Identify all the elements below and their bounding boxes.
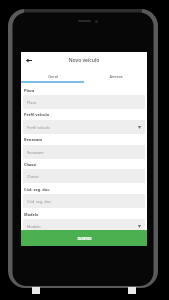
staticText: Cód. seg. doc. xyxy=(24,187,51,192)
staticText: Perfil veículo xyxy=(24,112,50,117)
button[interactable]: Chassi xyxy=(23,169,145,183)
button[interactable]: Perfil veículo xyxy=(23,120,145,134)
staticText: Chassi xyxy=(24,162,37,167)
button[interactable]: Renavam xyxy=(23,145,145,159)
staticText: Chassi xyxy=(27,174,39,179)
staticText: INSERIR xyxy=(77,236,92,241)
staticText: Modelo xyxy=(24,212,39,217)
staticText: Placa xyxy=(24,88,35,93)
staticText: Geral xyxy=(48,74,58,79)
staticText: Anexos xyxy=(109,74,123,79)
staticText: Renavam xyxy=(27,150,44,155)
staticText: Modelo xyxy=(27,224,41,229)
staticText: Novo veículo xyxy=(21,57,147,64)
button[interactable]: Placa xyxy=(23,95,145,109)
button[interactable]: Modelo xyxy=(23,219,145,233)
staticText: Renavam xyxy=(24,137,43,142)
button[interactable]: Back xyxy=(21,52,36,69)
button[interactable]: INSERIR xyxy=(21,230,147,246)
button[interactable]: Cód. seg. doc. xyxy=(23,194,145,208)
staticText: Cód. seg. doc. xyxy=(27,199,52,204)
staticText: Placa xyxy=(27,100,37,105)
button[interactable]: Anexos xyxy=(84,72,147,81)
button[interactable]: Geral xyxy=(21,72,84,81)
staticText: Perfil veículo xyxy=(27,125,50,130)
